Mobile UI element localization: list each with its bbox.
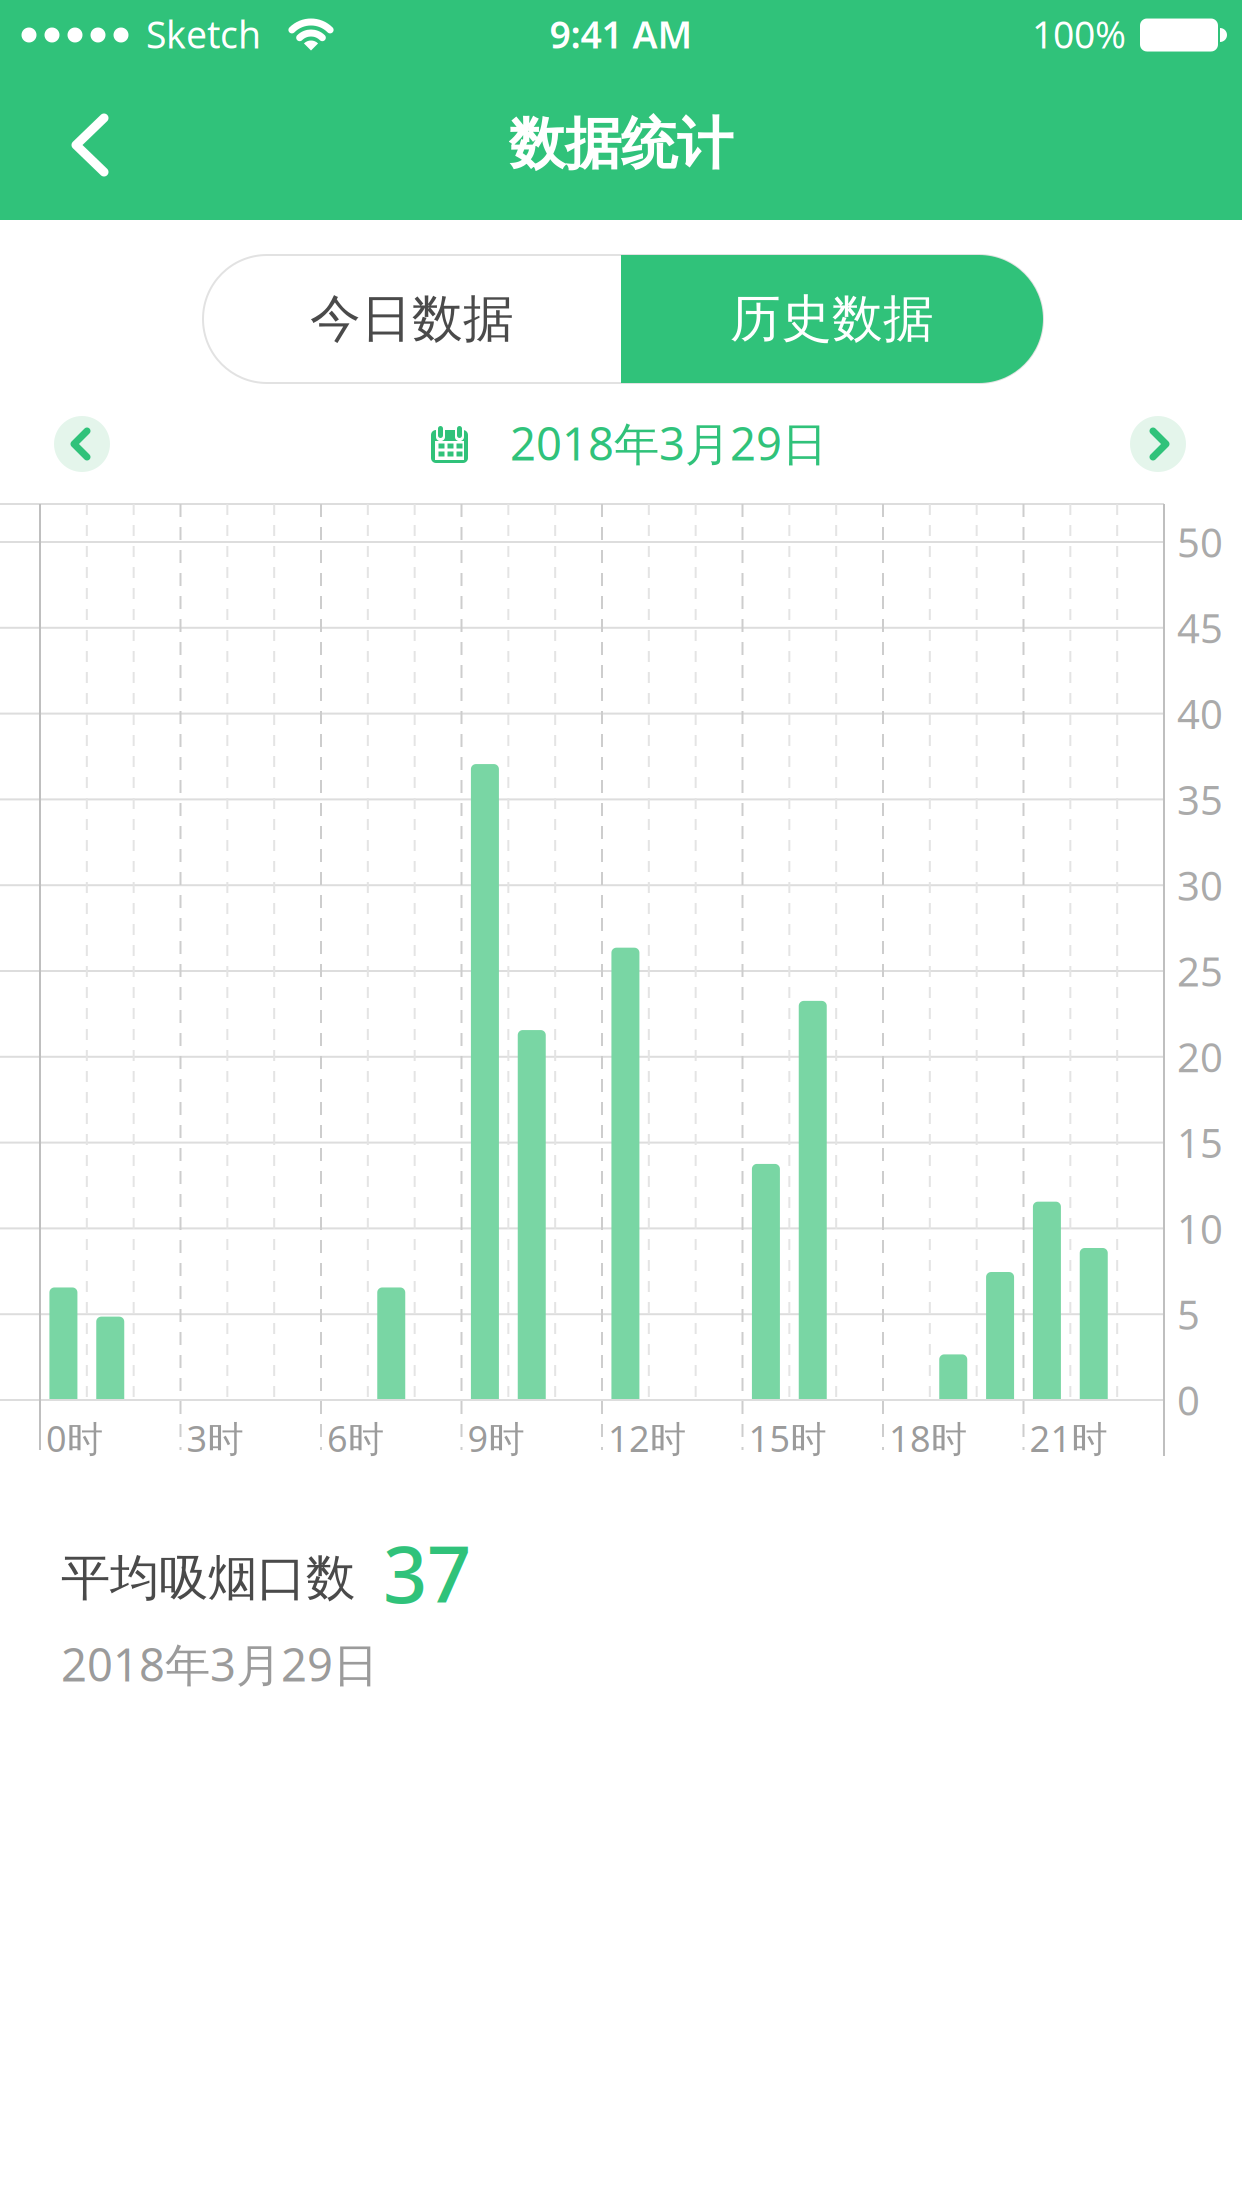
staticText: 6时 <box>327 1414 384 1462</box>
staticText: 37 <box>383 1522 471 1624</box>
staticText: 9:41 AM <box>549 9 692 59</box>
staticText: 100% <box>1032 9 1126 59</box>
staticText: 0 <box>1177 1373 1200 1426</box>
staticText: 50 <box>1177 515 1223 568</box>
staticText: 数据统计 <box>509 110 733 178</box>
staticText: 25 <box>1177 944 1223 997</box>
button[interactable]: Back <box>50 100 130 190</box>
staticText: 10 <box>1177 1202 1223 1255</box>
staticText: 20 <box>1177 1030 1223 1083</box>
staticText: 平均吸烟口数 <box>61 1548 355 1608</box>
staticText: 0时 <box>46 1414 103 1462</box>
staticText: 30 <box>1177 859 1223 912</box>
staticText: 15时 <box>748 1414 826 1462</box>
staticText: 12时 <box>608 1414 686 1462</box>
staticText: 今日数据 <box>310 288 514 350</box>
staticText: 2018年3月29日 <box>510 413 827 473</box>
staticText: 21时 <box>1029 1414 1107 1462</box>
staticText: 15 <box>1177 1116 1223 1169</box>
staticText: 5 <box>1177 1288 1200 1341</box>
button[interactable]: Previous day <box>54 416 110 472</box>
button[interactable]: Next day <box>1130 416 1186 472</box>
staticText: 45 <box>1177 601 1223 654</box>
staticText: 2018年3月29日 <box>61 1634 378 1694</box>
staticText: 3时 <box>186 1414 243 1462</box>
staticText: 18时 <box>889 1414 967 1462</box>
button[interactable]: 历史数据 <box>621 255 1043 383</box>
button[interactable]: Choose date <box>431 414 851 474</box>
staticText: 历史数据 <box>730 288 934 350</box>
staticText: 9时 <box>467 1414 524 1462</box>
staticText: 35 <box>1177 773 1223 826</box>
button[interactable]: 今日数据 <box>203 255 621 383</box>
staticText: Sketch <box>146 9 261 59</box>
staticText: 40 <box>1177 687 1223 740</box>
